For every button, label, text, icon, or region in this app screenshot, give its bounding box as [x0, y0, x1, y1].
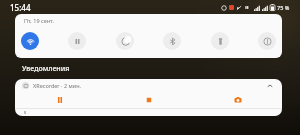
staticText: Пт, 19 сент.	[24, 17, 54, 24]
button[interactable]: Collapse	[264, 80, 275, 91]
button[interactable]: XRecorder · 2 мин.	[15, 79, 282, 116]
staticText: XRecorder · 2 мин.	[33, 82, 82, 89]
button[interactable]: Pause	[15, 92, 104, 108]
button[interactable]: Pause	[68, 32, 86, 50]
button[interactable]: Flashlight	[211, 32, 229, 50]
button[interactable]: Bluetooth	[163, 32, 181, 50]
staticText: Уведомления	[22, 64, 70, 74]
staticText: 75 %	[277, 4, 290, 11]
button[interactable]: Stop	[104, 92, 193, 108]
button[interactable]: Do not disturb	[116, 32, 134, 50]
staticText: 15:44	[10, 2, 31, 13]
button[interactable]: Wi-Fi	[21, 32, 39, 50]
button[interactable]: Auto rotate	[258, 32, 276, 50]
button[interactable]: Screenshot	[193, 92, 282, 108]
